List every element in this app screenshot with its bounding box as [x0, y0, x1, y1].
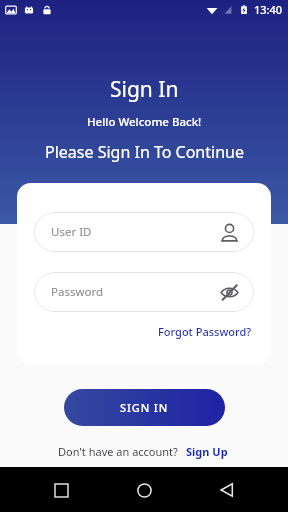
button[interactable]: User ID field	[34, 212, 254, 252]
staticText: Hello Welcome Back!	[87, 114, 202, 130]
staticText: 13:40	[254, 2, 283, 17]
staticText: Password	[51, 284, 104, 300]
button[interactable]: Sign Up	[184, 442, 230, 461]
button[interactable]: Recent apps	[39, 468, 83, 512]
staticText: Please Sign In To Continue	[45, 141, 244, 163]
button[interactable]: Password field	[34, 272, 254, 312]
button[interactable]: SIGN IN	[64, 389, 225, 426]
staticText: Sign In	[110, 75, 179, 104]
button[interactable]: Back	[205, 468, 249, 512]
staticText: Forgot Password?	[158, 324, 252, 339]
staticText: Sign Up	[186, 444, 228, 459]
button[interactable]: Forgot Password?	[156, 322, 254, 341]
staticText: SIGN IN	[120, 400, 169, 415]
other: Show password	[220, 283, 239, 302]
staticText: Don't have an account?	[58, 444, 178, 459]
other: User	[220, 223, 239, 242]
button[interactable]: Home	[122, 468, 166, 512]
staticText: User ID	[51, 224, 92, 240]
